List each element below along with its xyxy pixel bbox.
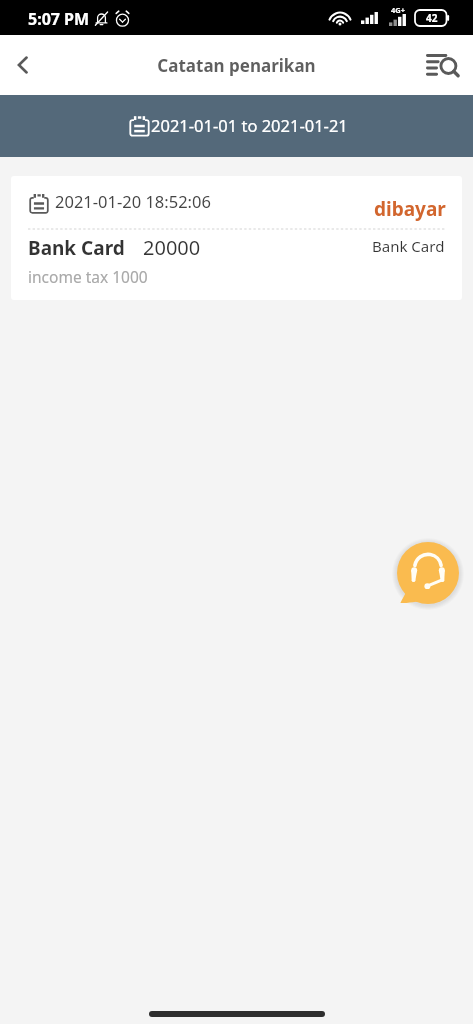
staticText: Bank Card [28,235,125,261]
staticText: 2021-01-20 18:52:06 [55,190,211,212]
button[interactable]: 2021-01-01 to 2021-01-21 [0,95,473,157]
staticText: Bank Card [372,236,445,256]
button[interactable]: Back [0,35,46,95]
staticText: 20000 [143,234,201,261]
staticText: 5:07 PM [28,8,90,30]
staticText: Catatan penarikan [157,54,316,77]
staticText: income tax 1000 [28,266,148,287]
button[interactable]: 2021-01-20 18:52:06 [11,176,462,300]
button[interactable]: Customer service [397,542,459,604]
staticText: 42 [426,11,438,25]
button[interactable]: Search records [410,35,473,95]
staticText: dibayar [374,196,446,222]
staticText: 4G+ [391,5,406,15]
staticText: 2021-01-01 to 2021-01-21 [151,114,348,136]
